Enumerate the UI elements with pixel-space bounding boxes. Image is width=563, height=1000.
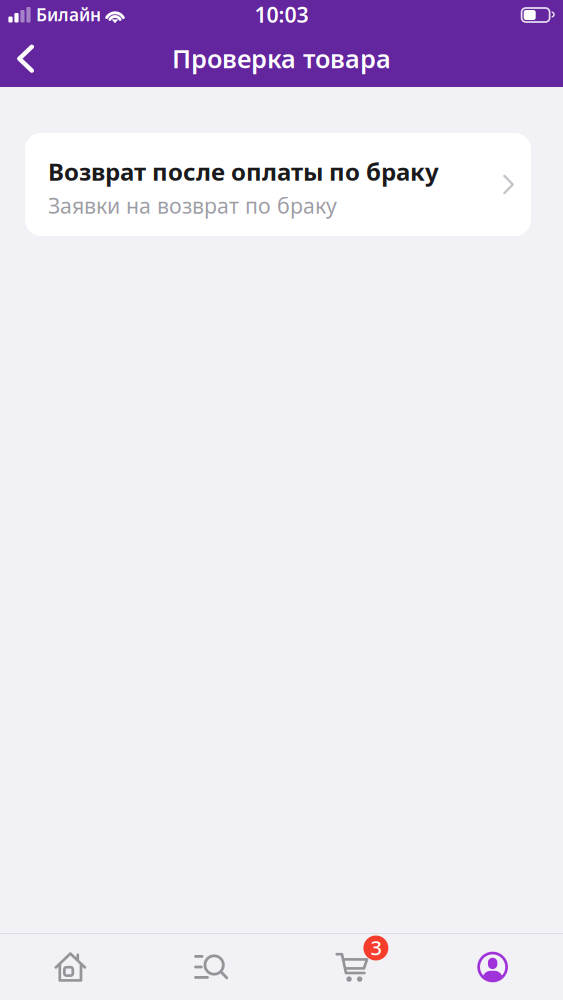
- staticText: 10:03: [254, 0, 308, 29]
- button[interactable]: Корзина: [281, 934, 422, 1000]
- button[interactable]: Назад: [0, 32, 50, 84]
- button[interactable]: Возврат после оплаты по браку: [25, 133, 531, 236]
- staticText: Проверка товара: [172, 42, 391, 75]
- staticText: Заявки на возврат по браку: [48, 191, 337, 220]
- button[interactable]: Главная: [0, 934, 141, 1000]
- staticText: Возврат после оплаты по браку: [48, 155, 439, 187]
- button[interactable]: Профиль: [422, 934, 563, 1000]
- button[interactable]: Каталог: [141, 934, 282, 1000]
- staticText: Билайн: [36, 3, 101, 26]
- staticText: 3: [370, 934, 381, 961]
